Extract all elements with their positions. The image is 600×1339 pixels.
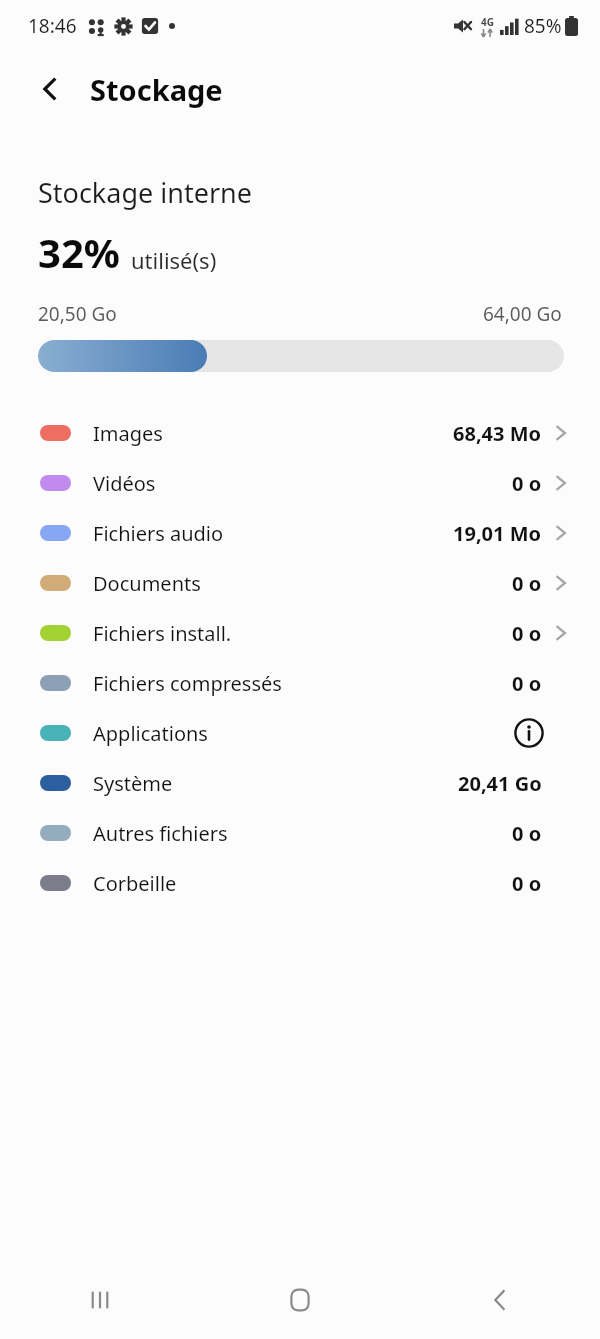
button[interactable]: Images bbox=[0, 408, 600, 458]
button[interactable]: Retour bbox=[400, 1260, 600, 1339]
staticText: 20,41 Go bbox=[458, 770, 542, 797]
staticText: 20,50 Go bbox=[38, 301, 117, 327]
button[interactable]: Vidéos bbox=[0, 458, 600, 508]
staticText: Stockage bbox=[90, 70, 223, 109]
button[interactable]: Corbeille bbox=[0, 858, 600, 908]
staticText: Système bbox=[93, 770, 173, 797]
staticText: Corbeille bbox=[93, 870, 177, 897]
staticText: 18:46 bbox=[28, 13, 77, 39]
staticText: 68,43 Mo bbox=[453, 420, 542, 447]
button[interactable]: Fichiers install. bbox=[0, 608, 600, 658]
button[interactable]: Accueil bbox=[200, 1260, 400, 1339]
staticText: Applications bbox=[93, 720, 208, 747]
staticText: 64,00 Go bbox=[483, 301, 562, 327]
button[interactable]: Applications récentes bbox=[0, 1260, 200, 1339]
staticText: 0 o bbox=[512, 570, 542, 597]
staticText: 4G bbox=[481, 15, 494, 29]
button[interactable]: Retour bbox=[28, 67, 72, 111]
staticText: 0 o bbox=[512, 670, 542, 697]
staticText: 0 o bbox=[512, 870, 542, 897]
button[interactable]: Fichiers audio bbox=[0, 508, 600, 558]
staticText: Documents bbox=[93, 570, 201, 597]
button[interactable]: Applications bbox=[0, 708, 600, 758]
staticText: Vidéos bbox=[93, 470, 156, 497]
staticText: Stockage interne bbox=[38, 174, 252, 211]
button[interactable]: Système bbox=[0, 758, 600, 808]
button[interactable]: Documents bbox=[0, 558, 600, 608]
other: Informations bbox=[512, 716, 546, 750]
staticText: Images bbox=[93, 420, 163, 447]
staticText: Fichiers audio bbox=[93, 520, 224, 547]
button[interactable]: Fichiers compressés bbox=[0, 658, 600, 708]
staticText: Autres fichiers bbox=[93, 820, 228, 847]
staticText: Fichiers install. bbox=[93, 620, 232, 647]
staticText: utilisé(s) bbox=[131, 245, 217, 275]
staticText: 85% bbox=[524, 13, 562, 39]
staticText: Fichiers compressés bbox=[93, 670, 282, 697]
button[interactable]: Autres fichiers bbox=[0, 808, 600, 858]
staticText: 0 o bbox=[512, 820, 542, 847]
staticText: 32% bbox=[38, 225, 120, 279]
staticText: 0 o bbox=[512, 620, 542, 647]
staticText: 19,01 Mo bbox=[453, 520, 542, 547]
staticText: 0 o bbox=[512, 470, 542, 497]
